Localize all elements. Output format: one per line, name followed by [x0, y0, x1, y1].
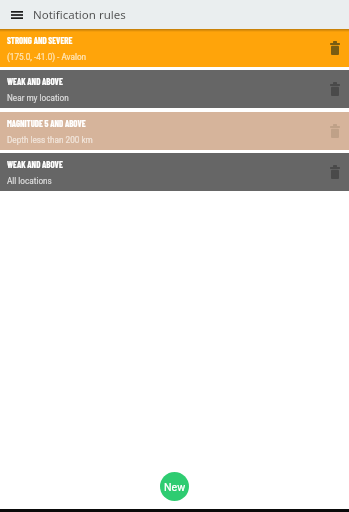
staticText: STRONG AND SEVERE — [7, 35, 73, 46]
button[interactable]: STRONG AND SEVERE — [0, 29, 349, 67]
staticText: Near my location — [7, 93, 69, 103]
staticText: New — [164, 481, 186, 493]
button[interactable]: Delete rule — [325, 162, 345, 182]
button[interactable]: Delete rule — [325, 121, 345, 141]
button[interactable]: Delete rule — [325, 38, 345, 58]
button[interactable]: WEAK AND ABOVE — [0, 153, 349, 191]
staticText: WEAK AND ABOVE — [7, 159, 63, 170]
button[interactable]: Delete rule — [325, 79, 345, 99]
button[interactable]: WEAK AND ABOVE — [0, 70, 349, 108]
button[interactable]: New — [160, 472, 189, 501]
staticText: (175.0, -41.0) - Avalon — [7, 52, 87, 62]
staticText: Notification rules — [33, 7, 126, 23]
staticText: WEAK AND ABOVE — [7, 76, 63, 87]
button[interactable]: Open navigation menu — [6, 4, 28, 26]
staticText: Depth less than 200 km — [7, 135, 93, 145]
staticText: MAGNITUDE 5 AND ABOVE — [7, 118, 86, 129]
staticText: All locations — [7, 176, 52, 186]
button[interactable]: MAGNITUDE 5 AND ABOVE — [0, 112, 349, 150]
